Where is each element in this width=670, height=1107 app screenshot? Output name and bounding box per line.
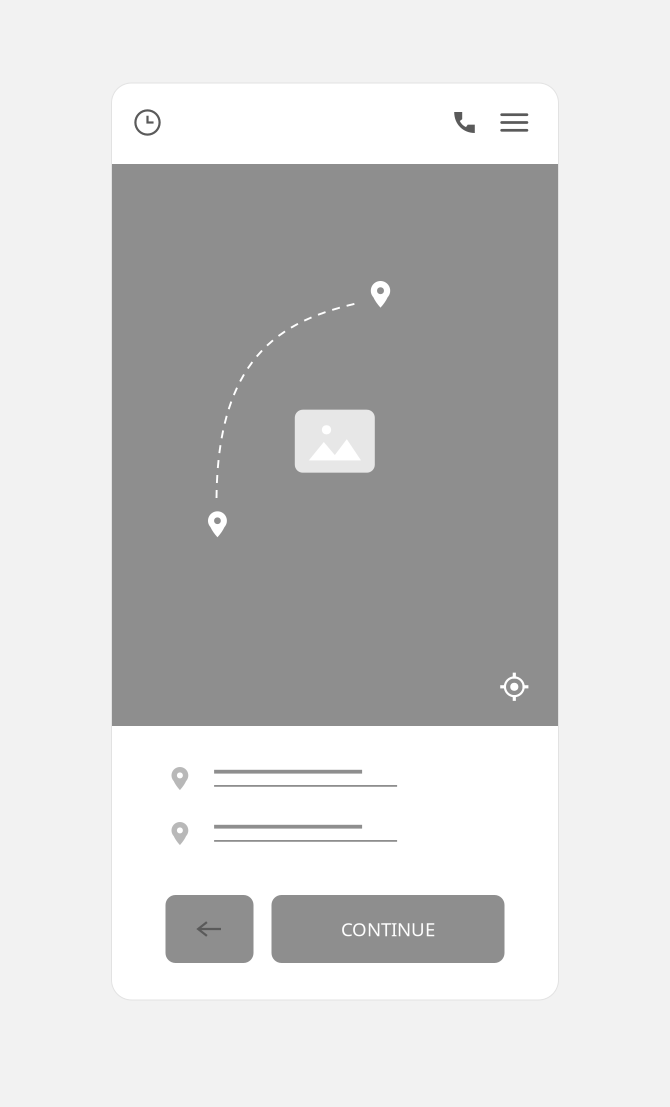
button[interactable]: Call xyxy=(442,100,486,144)
button[interactable]: Menu xyxy=(492,100,536,144)
staticText: CONTINUE xyxy=(341,917,435,941)
button[interactable]: Schedule xyxy=(125,100,169,144)
button[interactable]: My location xyxy=(492,665,536,709)
button[interactable]: CONTINUE xyxy=(271,895,504,963)
button[interactable]: Back xyxy=(165,895,253,963)
